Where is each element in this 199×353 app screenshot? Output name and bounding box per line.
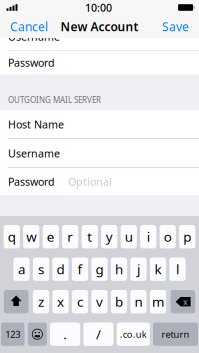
button[interactable]: Username: [0, 23, 199, 50]
staticText: Password: [8, 174, 55, 189]
staticText: Username: [8, 146, 60, 160]
button[interactable]: Emoji: [28, 322, 47, 346]
staticText: p: [183, 228, 191, 245]
staticText: f: [77, 260, 82, 278]
button[interactable]: Cancel: [4, 15, 54, 38]
staticText: n: [134, 293, 142, 310]
staticText: Save: [162, 18, 189, 34]
button[interactable]: Host Name: [0, 110, 199, 138]
staticText: x: [57, 293, 64, 310]
button[interactable]: Save: [156, 15, 195, 38]
staticText: m: [152, 293, 164, 310]
button[interactable]: h: [111, 257, 127, 281]
staticText: i: [147, 228, 150, 245]
button[interactable]: Password: [0, 51, 199, 75]
staticText: v: [96, 293, 103, 310]
staticText: d: [56, 260, 64, 278]
staticText: 10:00: [85, 0, 112, 15]
button[interactable]: s: [33, 257, 49, 281]
button[interactable]: g: [91, 257, 108, 281]
staticText: .co.uk: [120, 328, 147, 340]
staticText: u: [125, 228, 133, 245]
staticText: t: [87, 228, 92, 245]
button[interactable]: m: [150, 290, 166, 313]
button[interactable]: i: [140, 225, 156, 248]
staticText: j: [137, 260, 140, 278]
staticText: l: [176, 260, 179, 278]
staticText: Password: [8, 55, 55, 70]
button[interactable]: v: [91, 290, 108, 313]
button[interactable]: .co.uk: [117, 322, 150, 346]
button[interactable]: n: [130, 290, 147, 313]
button[interactable]: u: [121, 225, 137, 248]
button[interactable]: Username: [0, 139, 199, 167]
button[interactable]: e: [43, 225, 59, 248]
staticText: Username: [8, 29, 60, 44]
staticText: OUTGOING MAIL SERVER: [8, 94, 101, 105]
staticText: o: [164, 228, 172, 245]
button[interactable]: r: [62, 225, 78, 248]
staticText: return: [162, 328, 190, 340]
staticText: k: [154, 260, 161, 278]
staticText: 123: [5, 328, 20, 340]
button[interactable]: return: [153, 322, 198, 346]
button[interactable]: q: [4, 225, 20, 248]
staticText: h: [115, 260, 123, 278]
staticText: q: [8, 228, 16, 245]
staticText: a: [18, 260, 25, 278]
button[interactable]: b: [111, 290, 127, 313]
staticText: /: [96, 325, 101, 343]
button[interactable]: /: [83, 322, 113, 346]
button[interactable]: w: [23, 225, 39, 248]
button[interactable]: 123: [1, 322, 25, 346]
button[interactable]: .: [50, 322, 80, 346]
staticText: x: [183, 295, 188, 308]
staticText: s: [38, 260, 44, 278]
staticText: New Account: [60, 18, 138, 34]
staticText: .: [63, 325, 67, 343]
button[interactable]: o: [160, 225, 176, 248]
button[interactable]: x: [52, 290, 69, 313]
button[interactable]: Password: [0, 168, 199, 195]
button[interactable]: Shift: [4, 290, 28, 313]
staticText: b: [115, 293, 123, 310]
button[interactable]: z: [33, 290, 49, 313]
button[interactable]: Delete: [171, 290, 195, 313]
staticText: e: [47, 228, 55, 245]
button[interactable]: k: [150, 257, 166, 281]
staticText: z: [38, 293, 44, 310]
staticText: r: [67, 228, 73, 245]
button[interactable]: p: [179, 225, 195, 248]
button[interactable]: j: [130, 257, 147, 281]
button[interactable]: a: [13, 257, 30, 281]
staticText: g: [95, 260, 103, 278]
staticText: c: [77, 293, 83, 310]
button[interactable]: t: [82, 225, 98, 248]
button[interactable]: f: [72, 257, 88, 281]
staticText: w: [26, 228, 36, 245]
button[interactable]: c: [72, 290, 88, 313]
button[interactable]: l: [169, 257, 186, 281]
staticText: Host Name: [8, 117, 64, 131]
staticText: y: [106, 228, 113, 245]
staticText: Optional: [68, 174, 112, 189]
staticText: Cancel: [10, 18, 48, 34]
button[interactable]: d: [52, 257, 69, 281]
button[interactable]: y: [101, 225, 117, 248]
